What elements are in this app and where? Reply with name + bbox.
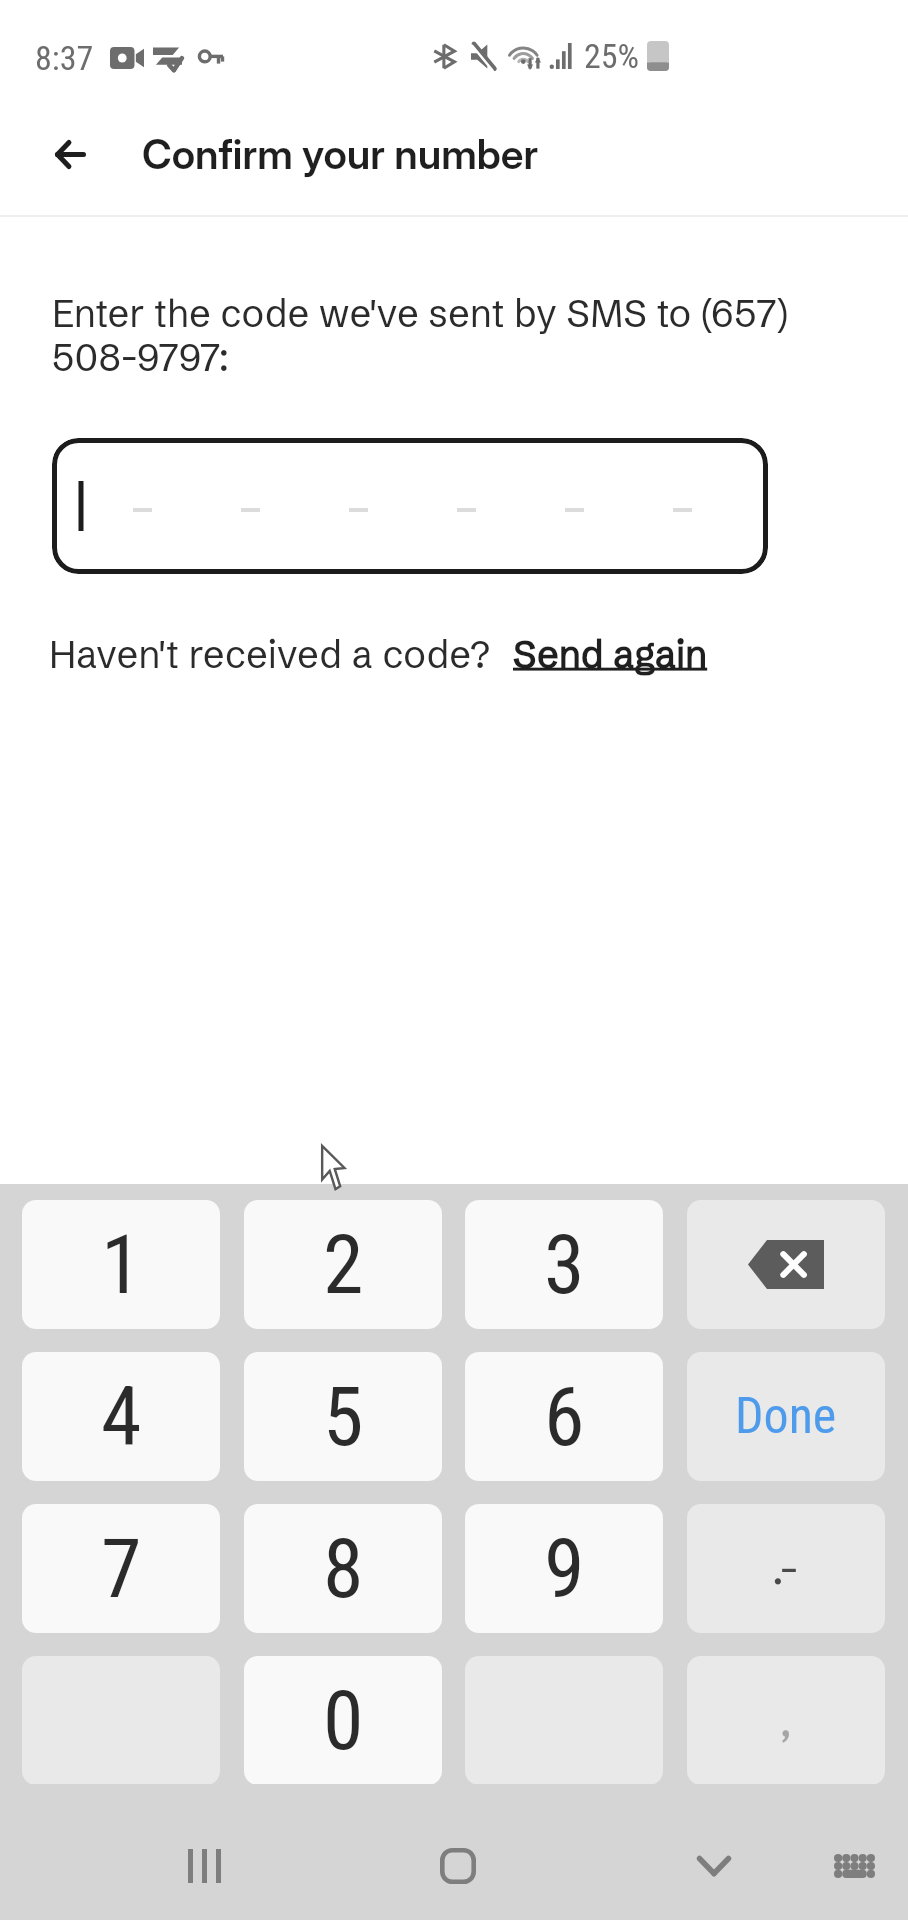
button[interactable]: 0: [244, 1656, 442, 1785]
staticText: 4: [101, 1369, 142, 1465]
staticText: 8: [323, 1521, 364, 1617]
staticText: 7: [101, 1521, 142, 1617]
staticText: Enter the code we've sent by SMS to (657…: [52, 290, 789, 381]
button[interactable]: Done: [687, 1352, 885, 1481]
button[interactable]: Home: [428, 1836, 488, 1896]
button[interactable]: 7: [22, 1504, 220, 1633]
button[interactable]: ,: [687, 1656, 885, 1785]
staticText: Confirm your number: [142, 129, 539, 179]
staticText: 1: [101, 1217, 142, 1313]
staticText: 9: [544, 1521, 585, 1617]
button[interactable]: .-: [687, 1504, 885, 1633]
staticText: Done: [735, 1387, 837, 1446]
button[interactable]: Recents: [174, 1836, 234, 1896]
button[interactable]: Back: [40, 124, 100, 184]
staticText: 8:37: [35, 38, 94, 78]
staticText: Send again: [513, 631, 708, 678]
button[interactable]: 5: [244, 1352, 442, 1481]
button[interactable]: 8: [244, 1504, 442, 1633]
button[interactable]: 6: [465, 1352, 663, 1481]
button[interactable]: 2: [244, 1200, 442, 1329]
staticText: 0: [323, 1673, 364, 1769]
button[interactable]: 1: [22, 1200, 220, 1329]
button[interactable]: 9: [465, 1504, 663, 1633]
button[interactable]: BKSP: [687, 1200, 885, 1329]
staticText: .-: [772, 1543, 800, 1595]
staticText: 25%: [584, 36, 640, 76]
button[interactable]: [52, 438, 768, 574]
button[interactable]: Change keyboard: [824, 1836, 884, 1896]
staticText: ,: [780, 1695, 792, 1747]
button[interactable]: Send again: [513, 631, 708, 678]
staticText: 5: [323, 1369, 364, 1465]
staticText: 3: [544, 1217, 585, 1313]
button[interactable]: 4: [22, 1352, 220, 1481]
button[interactable]: 3: [465, 1200, 663, 1329]
button[interactable]: Hide keyboard: [684, 1836, 744, 1896]
staticText: Haven't received a code?: [49, 631, 491, 678]
staticText: 6: [544, 1369, 585, 1465]
staticText: 2: [323, 1217, 364, 1313]
